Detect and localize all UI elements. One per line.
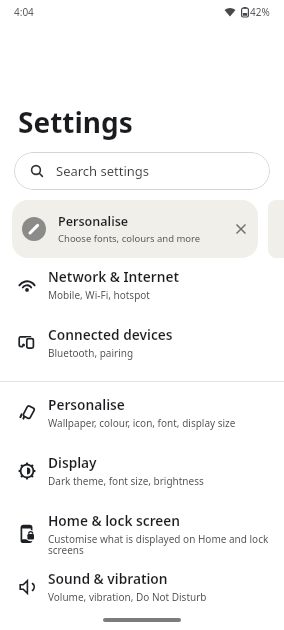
staticText: Wallpaper, colour, icon, font, display s…	[48, 416, 236, 430]
button[interactable]	[229, 217, 253, 241]
staticText: Personalise	[48, 395, 125, 414]
button[interactable]: Display	[0, 447, 284, 505]
staticText: Connected devices	[48, 325, 173, 344]
button[interactable]: Personalise	[12, 200, 258, 258]
staticText: Bluetooth, pairing	[48, 346, 134, 360]
button[interactable]: Personalise	[0, 389, 284, 447]
staticText: Customise what is displayed on Home and …	[48, 532, 270, 557]
button[interactable]: Search settings	[14, 152, 270, 190]
staticText: Personalise	[58, 213, 129, 230]
staticText: 42%	[250, 5, 270, 19]
staticText: Home & lock screen	[48, 511, 181, 530]
staticText: Network & Internet	[48, 267, 180, 286]
staticText: Volume, vibration, Do Not Disturb	[48, 590, 207, 604]
button[interactable]: Home & lock screen	[0, 505, 284, 563]
staticText: Sound & vibration	[48, 569, 168, 588]
staticText: Dark theme, font size, brightness	[48, 474, 204, 488]
staticText: Display	[48, 453, 97, 472]
staticText: Search settings	[56, 162, 150, 180]
button[interactable]: Network & Internet	[0, 261, 284, 319]
staticText: Choose fonts, colours and more	[58, 232, 201, 245]
button[interactable]	[268, 200, 284, 258]
staticText: Mobile, Wi-Fi, hotspot	[48, 288, 150, 302]
button[interactable]: Sound & vibration	[0, 563, 284, 621]
staticText: Settings	[18, 103, 133, 141]
button[interactable]: Connected devices	[0, 319, 284, 377]
staticText: 4:04	[14, 5, 34, 19]
